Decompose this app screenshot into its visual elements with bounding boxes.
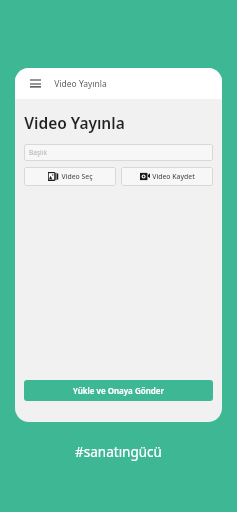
staticText: Video Kaydet [152,172,195,181]
staticText: Video Seç [61,172,93,181]
staticText: Yükle ve Onaya Gönder [73,385,164,396]
staticText: Video Yayınla [24,112,125,133]
button[interactable]: Video Seç [24,167,116,186]
button[interactable]: Başlık [24,144,213,161]
button[interactable]: Video Kaydet [121,167,213,186]
button[interactable]: Yükle ve Onaya Gönder [24,380,213,401]
staticText: #sanatıngücü [75,443,162,461]
button[interactable]: Menu [26,75,44,93]
staticText: Video Yayınla [54,78,107,90]
staticText: Başlık [29,148,47,157]
